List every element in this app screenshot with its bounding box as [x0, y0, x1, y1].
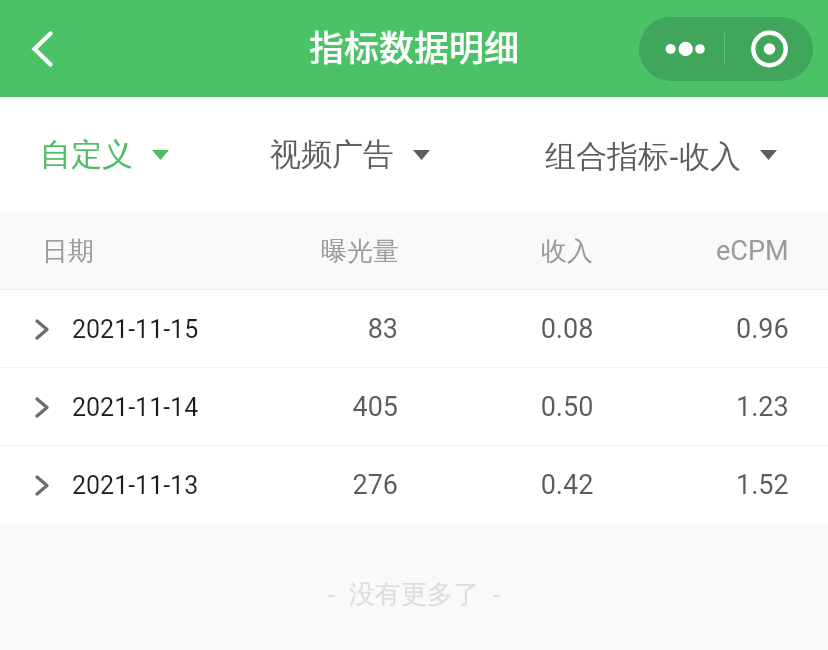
staticText: 276 — [248, 469, 398, 501]
staticText: 1.52 — [736, 469, 789, 501]
button[interactable]: 2021-11-15 — [0, 290, 828, 368]
button[interactable]: More options — [639, 17, 725, 81]
button[interactable]: 组合指标-收入 — [545, 97, 777, 212]
staticText: 指标数据明细 — [309, 20, 520, 71]
staticText: 2021-11-13 — [72, 471, 199, 500]
staticText: 视频广告 — [270, 135, 394, 174]
staticText: 收入 — [491, 235, 643, 268]
staticText: 0.96 — [736, 313, 789, 345]
staticText: eCPM — [716, 235, 789, 267]
staticText: 自定义 — [40, 135, 133, 174]
button[interactable]: 2021-11-13 — [0, 446, 828, 524]
button[interactable]: 自定义 — [40, 97, 169, 212]
button[interactable]: Back — [0, 0, 84, 97]
staticText: 组合指标-收入 — [545, 134, 741, 176]
staticText: 405 — [248, 391, 398, 423]
staticText: 2021-11-14 — [72, 393, 199, 422]
staticText: 2021-11-15 — [72, 315, 199, 344]
staticText: 0.50 — [491, 391, 643, 423]
button[interactable]: 视频广告 — [270, 97, 430, 212]
staticText: 曝光量 — [284, 235, 436, 268]
staticText: 日期 — [42, 235, 94, 268]
staticText: 0.08 — [491, 313, 643, 345]
staticText: - 没有更多了 - — [327, 575, 501, 611]
staticText: 0.42 — [491, 469, 643, 501]
staticText: 1.23 — [736, 391, 789, 423]
button[interactable]: 2021-11-14 — [0, 368, 828, 446]
staticText: 83 — [248, 313, 398, 345]
button[interactable]: Close mini program — [725, 17, 813, 81]
